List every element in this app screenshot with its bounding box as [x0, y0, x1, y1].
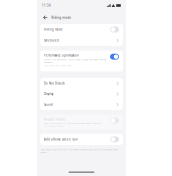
staticText: Display — [44, 92, 53, 96]
staticText: Sound — [44, 103, 53, 106]
button[interactable]: Riding mode — [40, 24, 123, 35]
staticText: Riding mode — [44, 28, 63, 31]
button[interactable]: Do Not Disturb — [40, 78, 123, 89]
button[interactable]: Performance optimization — [40, 50, 123, 72]
staticText: Add a quick start switch to the Home scr… — [40, 148, 117, 154]
button[interactable]: Display — [40, 89, 123, 99]
staticText: Focused riding — [44, 118, 65, 121]
staticText: Riding mode — [51, 15, 71, 20]
staticText: 11:34 — [42, 4, 51, 7]
staticText: Quickly and efficiently restart apps to … — [44, 58, 106, 63]
button[interactable]: Back — [42, 14, 49, 21]
staticText: Add a Home screen icon — [44, 137, 78, 141]
button[interactable]: Add a Home screen icon — [40, 134, 123, 145]
button[interactable]: Sound — [40, 99, 123, 110]
staticText: Last optimized 3 hours ago — [44, 64, 71, 67]
staticText: Do Not Disturb — [44, 82, 65, 85]
staticText: Scheduled — [44, 39, 59, 42]
staticText: After turning this on, you can't use oth… — [44, 122, 101, 127]
button[interactable]: Scheduled — [40, 35, 123, 46]
staticText: Performance optimization — [44, 54, 79, 57]
